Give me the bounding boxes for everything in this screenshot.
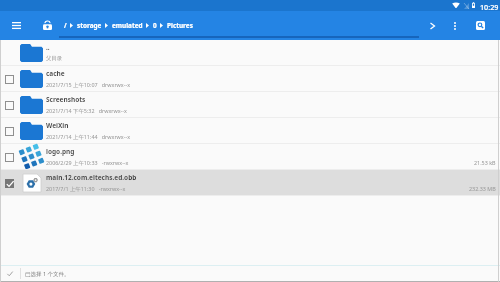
button[interactable]: Screenshots: [0, 92, 500, 118]
staticText: 2021/7/14 上午11:44 drwxrwx--x: [46, 133, 131, 140]
staticText: ..: [46, 43, 50, 52]
staticText: emulated: [112, 21, 143, 30]
staticText: Screenshots: [46, 95, 86, 104]
button[interactable]: More options: [445, 16, 464, 35]
button[interactable]: logo.png: [0, 144, 500, 170]
button[interactable]: Menu: [7, 16, 26, 35]
staticText: cache: [46, 69, 65, 78]
staticText: WeiXin: [46, 121, 69, 130]
staticText: main.12.com.eltechs.ed.obb: [46, 173, 137, 182]
staticText: storage: [77, 21, 102, 30]
staticText: 2006/2/29 上午10:33 -rwxrwx--x: [46, 159, 129, 166]
staticText: logo.png: [46, 147, 75, 156]
staticText: 21.53 kB: [474, 159, 496, 166]
staticText: 232.33 MB: [469, 185, 496, 192]
button[interactable]: Forward: [423, 16, 442, 35]
staticText: 0: [153, 21, 157, 30]
staticText: 2017/7/1 上午11:30 -rwxrwx--x: [46, 185, 126, 192]
button[interactable]: cache: [0, 66, 500, 92]
staticText: 2021/7/15 上午10:07 drwxrwx--x: [46, 81, 131, 88]
staticText: /: [64, 21, 67, 30]
button[interactable]: Search: [471, 16, 490, 35]
staticText: 已选择 1 个文件。: [25, 270, 70, 278]
button[interactable]: ..: [0, 40, 500, 66]
staticText: 10:29: [480, 2, 499, 12]
button[interactable]: WeiXin: [0, 118, 500, 144]
staticText: 父目录: [46, 55, 63, 62]
staticText: 2021/7/14 下午5:32 drwxrwx--x: [46, 107, 127, 114]
staticText: Pictures: [167, 21, 193, 30]
button[interactable]: Lock: [38, 16, 57, 35]
button[interactable]: main.12.com.eltechs.ed.obb: [0, 170, 500, 196]
